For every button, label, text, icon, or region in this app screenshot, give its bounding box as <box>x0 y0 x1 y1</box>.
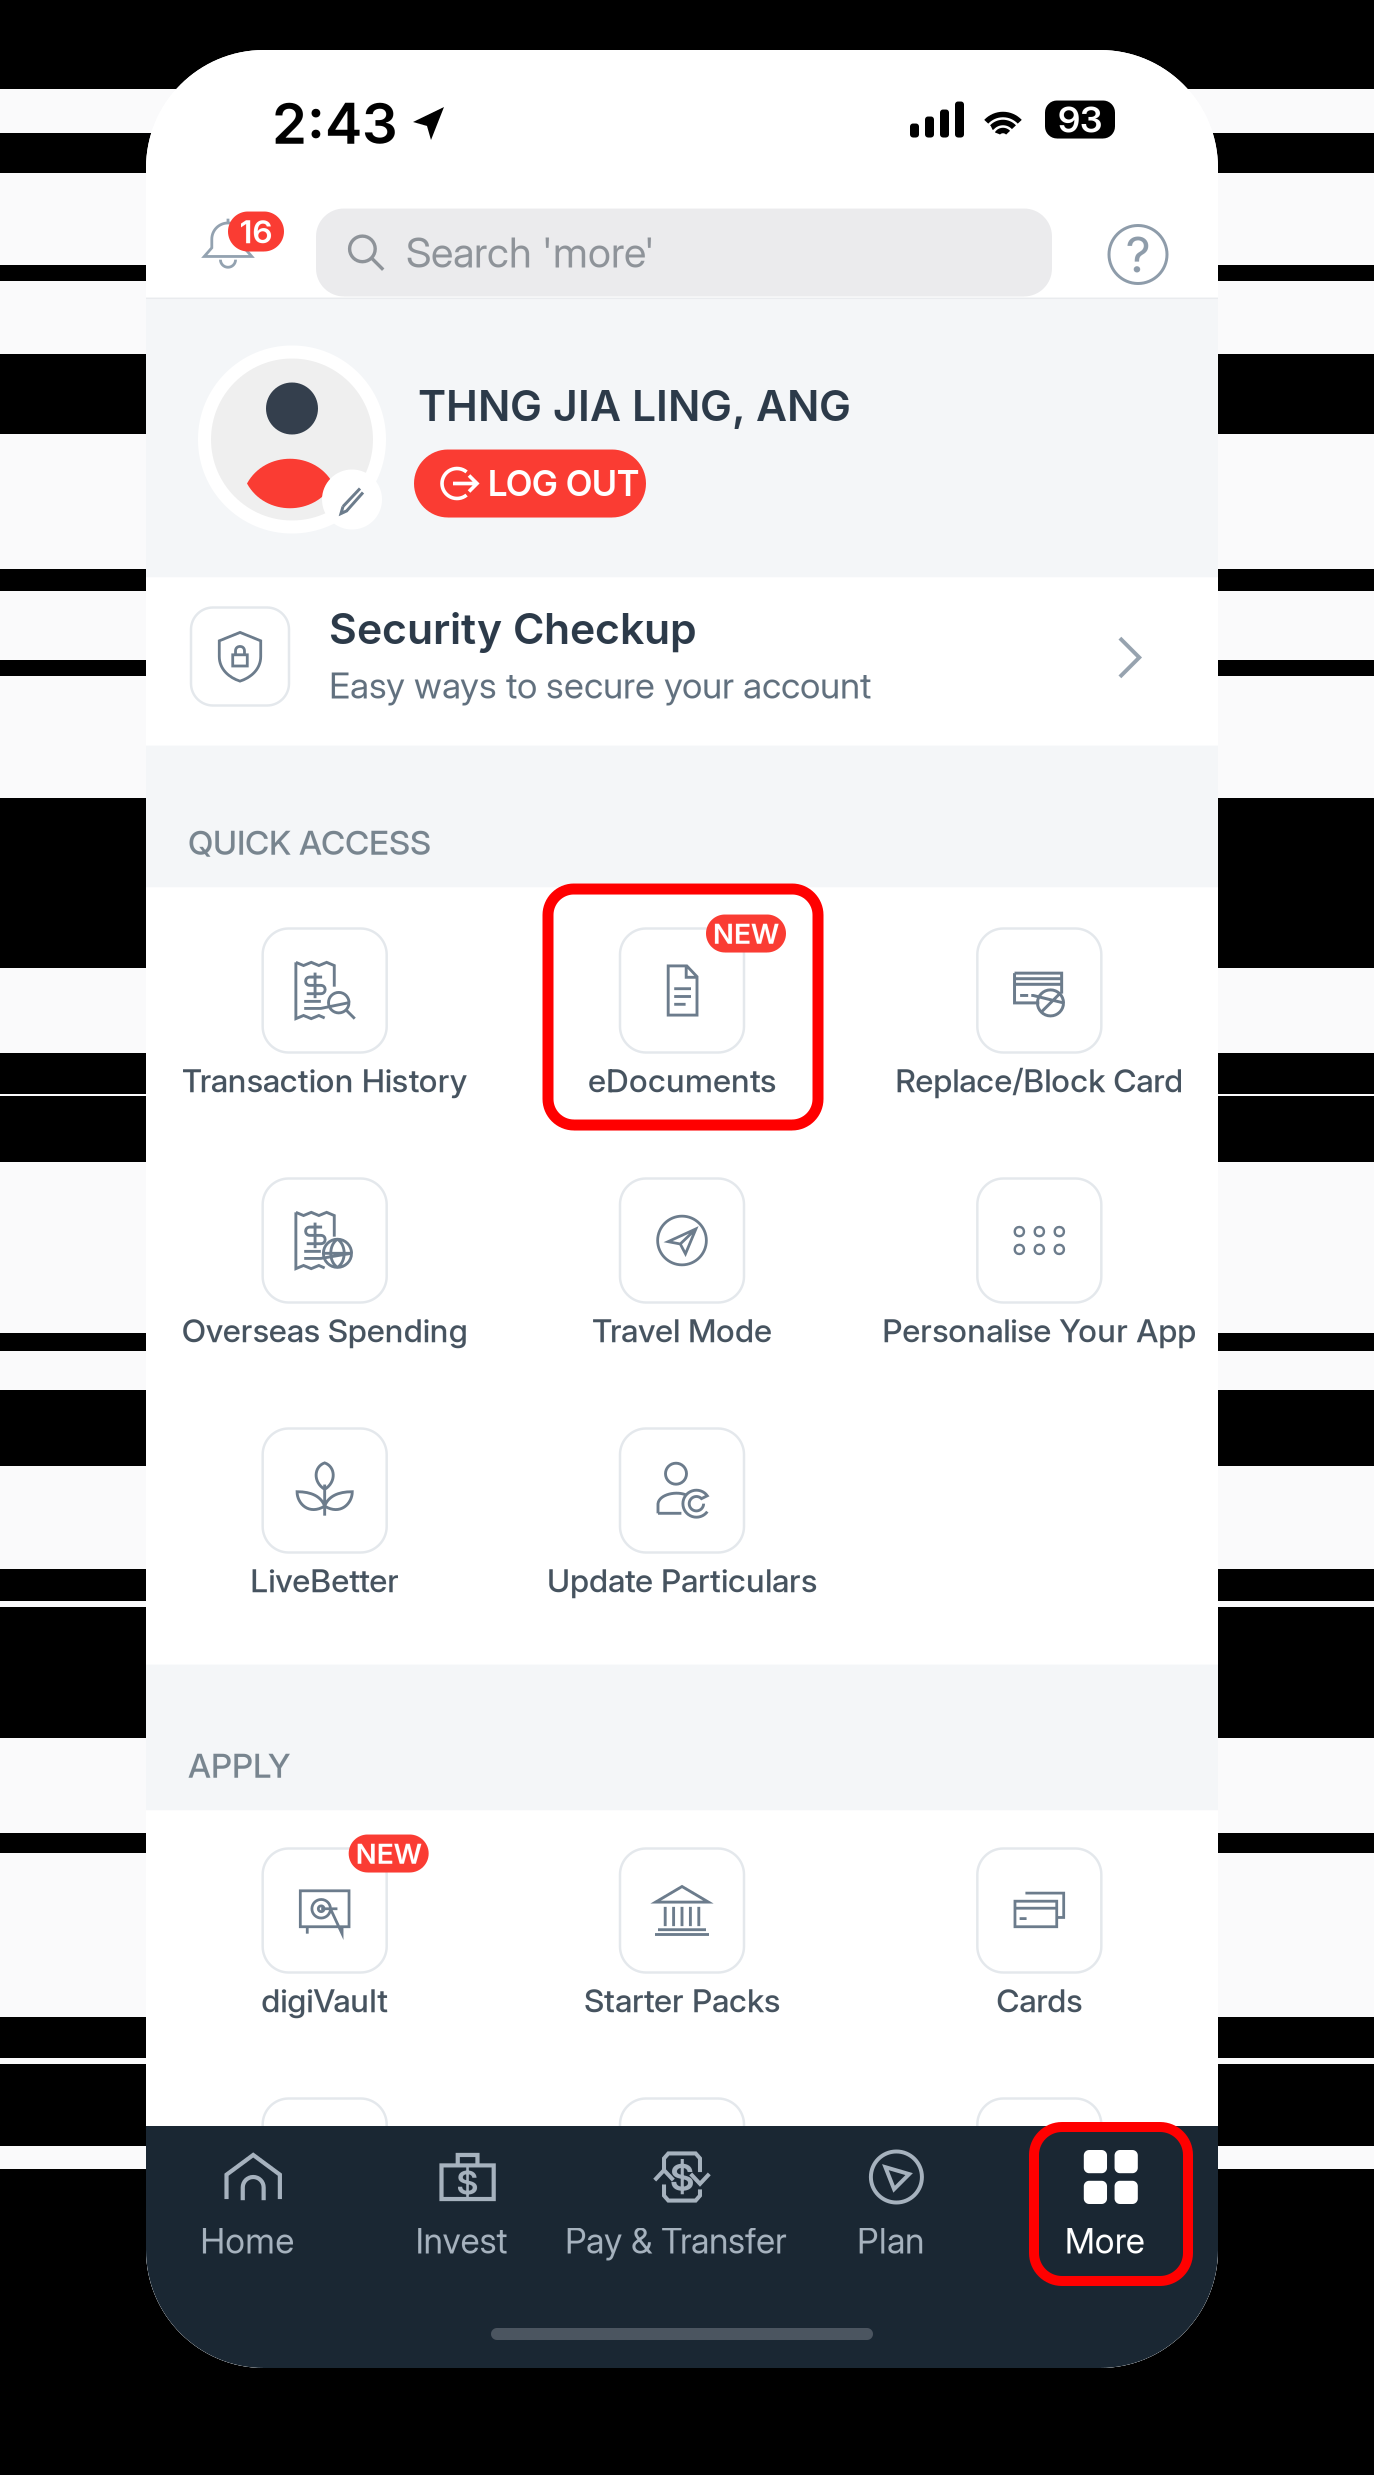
button[interactable]: Search 'more' <box>316 208 1052 296</box>
button[interactable] <box>146 2098 503 2348</box>
staticText: Security Checkup <box>329 603 697 654</box>
staticText: Home <box>200 2220 294 2262</box>
button[interactable]: Security Checkup <box>146 577 1218 745</box>
button[interactable]: NEW <box>503 928 861 1178</box>
button[interactable]: Transaction History <box>146 928 503 1178</box>
button[interactable] <box>861 2098 1218 2348</box>
staticText: eDocuments <box>588 1061 776 1100</box>
staticText: 93 <box>1058 98 1102 141</box>
staticText: Replace/Block Card <box>895 1061 1183 1100</box>
button[interactable]: $ <box>360 2126 575 2368</box>
staticText: Update Particulars <box>547 1561 817 1600</box>
staticText: QUICK ACCESS <box>188 822 431 863</box>
staticText: $ <box>670 2154 694 2200</box>
staticText: Travel Mode <box>592 1311 772 1350</box>
button[interactable] <box>503 2098 861 2348</box>
button[interactable]: More <box>1004 2126 1218 2368</box>
staticText: ? <box>1125 225 1150 284</box>
button[interactable]: Home <box>146 2126 360 2368</box>
button[interactable]: Overseas Spending <box>146 1178 503 1428</box>
staticText: Plan <box>857 2220 924 2262</box>
staticText: 2:43 <box>272 90 398 157</box>
staticText: Easy ways to secure your account <box>329 664 871 707</box>
staticText: More <box>1065 2220 1145 2262</box>
staticText: $ <box>457 2162 479 2203</box>
button[interactable]: Starter Packs <box>503 1848 861 2098</box>
staticText: NEW <box>356 1837 422 1870</box>
staticText: Starter Packs <box>584 1981 780 2020</box>
button[interactable]: Cards <box>861 1848 1218 2098</box>
button[interactable]: Travel Mode <box>503 1178 861 1428</box>
button[interactable]: Personalise Your App <box>861 1178 1218 1428</box>
button[interactable]: Plan <box>789 2126 1004 2368</box>
button[interactable]: Help <box>1106 222 1170 286</box>
button[interactable]: LOG OUT <box>414 449 646 517</box>
staticText: NEW <box>713 917 779 950</box>
staticText: digiVault <box>261 1981 388 2020</box>
staticText: APPLY <box>188 1745 290 1786</box>
staticText: Transaction History <box>182 1061 468 1100</box>
button[interactable]: NEW <box>146 1848 503 2098</box>
staticText: THNG JIA LING, ANG <box>418 380 851 431</box>
button[interactable]: LiveBetter <box>146 1428 503 1678</box>
staticText: Overseas Spending <box>182 1311 468 1350</box>
button[interactable]: Replace/Block Card <box>861 928 1218 1178</box>
staticText: Pay & Transfer <box>565 2220 787 2262</box>
button[interactable]: Update Particulars <box>503 1428 861 1678</box>
staticText: Search 'more' <box>406 227 655 277</box>
staticText: Invest <box>416 2220 508 2262</box>
button[interactable]: Notifications <box>177 211 297 295</box>
staticText: Cards <box>996 1981 1082 2020</box>
staticText: LiveBetter <box>250 1561 399 1600</box>
button[interactable]: $ <box>575 2126 789 2368</box>
staticText: LOG OUT <box>488 462 639 504</box>
staticText: Personalise Your App <box>882 1311 1196 1350</box>
staticText: 16 <box>239 212 272 251</box>
